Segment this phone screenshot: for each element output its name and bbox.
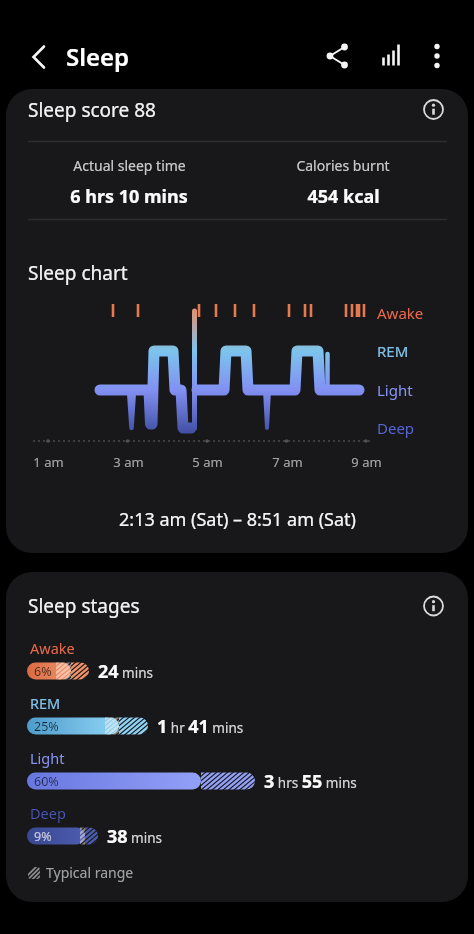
button[interactable] — [367, 32, 415, 80]
button[interactable] — [413, 32, 461, 80]
staticText: REM — [377, 341, 409, 361]
staticText: 24 mins — [98, 659, 154, 684]
staticText: 3 hrs 55 mins — [264, 769, 357, 794]
staticText: Sleep stages — [28, 593, 140, 619]
staticText: Calories burnt — [296, 156, 390, 175]
button[interactable] — [413, 585, 454, 626]
staticText: 6 hrs 10 mins — [70, 184, 188, 209]
staticText: 3 am — [113, 453, 144, 471]
staticText: 7 am — [272, 453, 303, 471]
staticText: REM — [30, 693, 61, 713]
staticText: 1 am — [33, 453, 64, 471]
staticText: 6% — [34, 663, 52, 680]
staticText: Awake — [377, 303, 424, 323]
staticText: Deep — [30, 803, 66, 823]
staticText: Typical range — [46, 863, 134, 882]
staticText: 9% — [34, 828, 52, 845]
staticText: 25% — [34, 718, 59, 735]
staticText: Sleep — [66, 40, 130, 73]
staticText: 5 am — [192, 453, 223, 471]
button[interactable] — [14, 33, 62, 81]
staticText: 9 am — [351, 453, 382, 471]
staticText: Light — [30, 748, 65, 768]
staticText: Actual sleep time — [73, 156, 186, 175]
staticText: Sleep score 88 — [28, 97, 156, 123]
staticText: Awake — [30, 638, 75, 658]
staticText: 2:13 am (Sat) – 8:51 am (Sat) — [119, 507, 356, 532]
button[interactable] — [313, 32, 361, 80]
staticText: 38 mins — [107, 824, 163, 849]
button[interactable] — [413, 89, 454, 130]
staticText: Light — [377, 380, 413, 400]
staticText: 1 hr 41 mins — [157, 714, 244, 739]
staticText: Sleep chart — [28, 260, 128, 286]
staticText: 454 kcal — [307, 184, 380, 209]
staticText: 60% — [34, 773, 59, 790]
staticText: Deep — [377, 418, 415, 438]
